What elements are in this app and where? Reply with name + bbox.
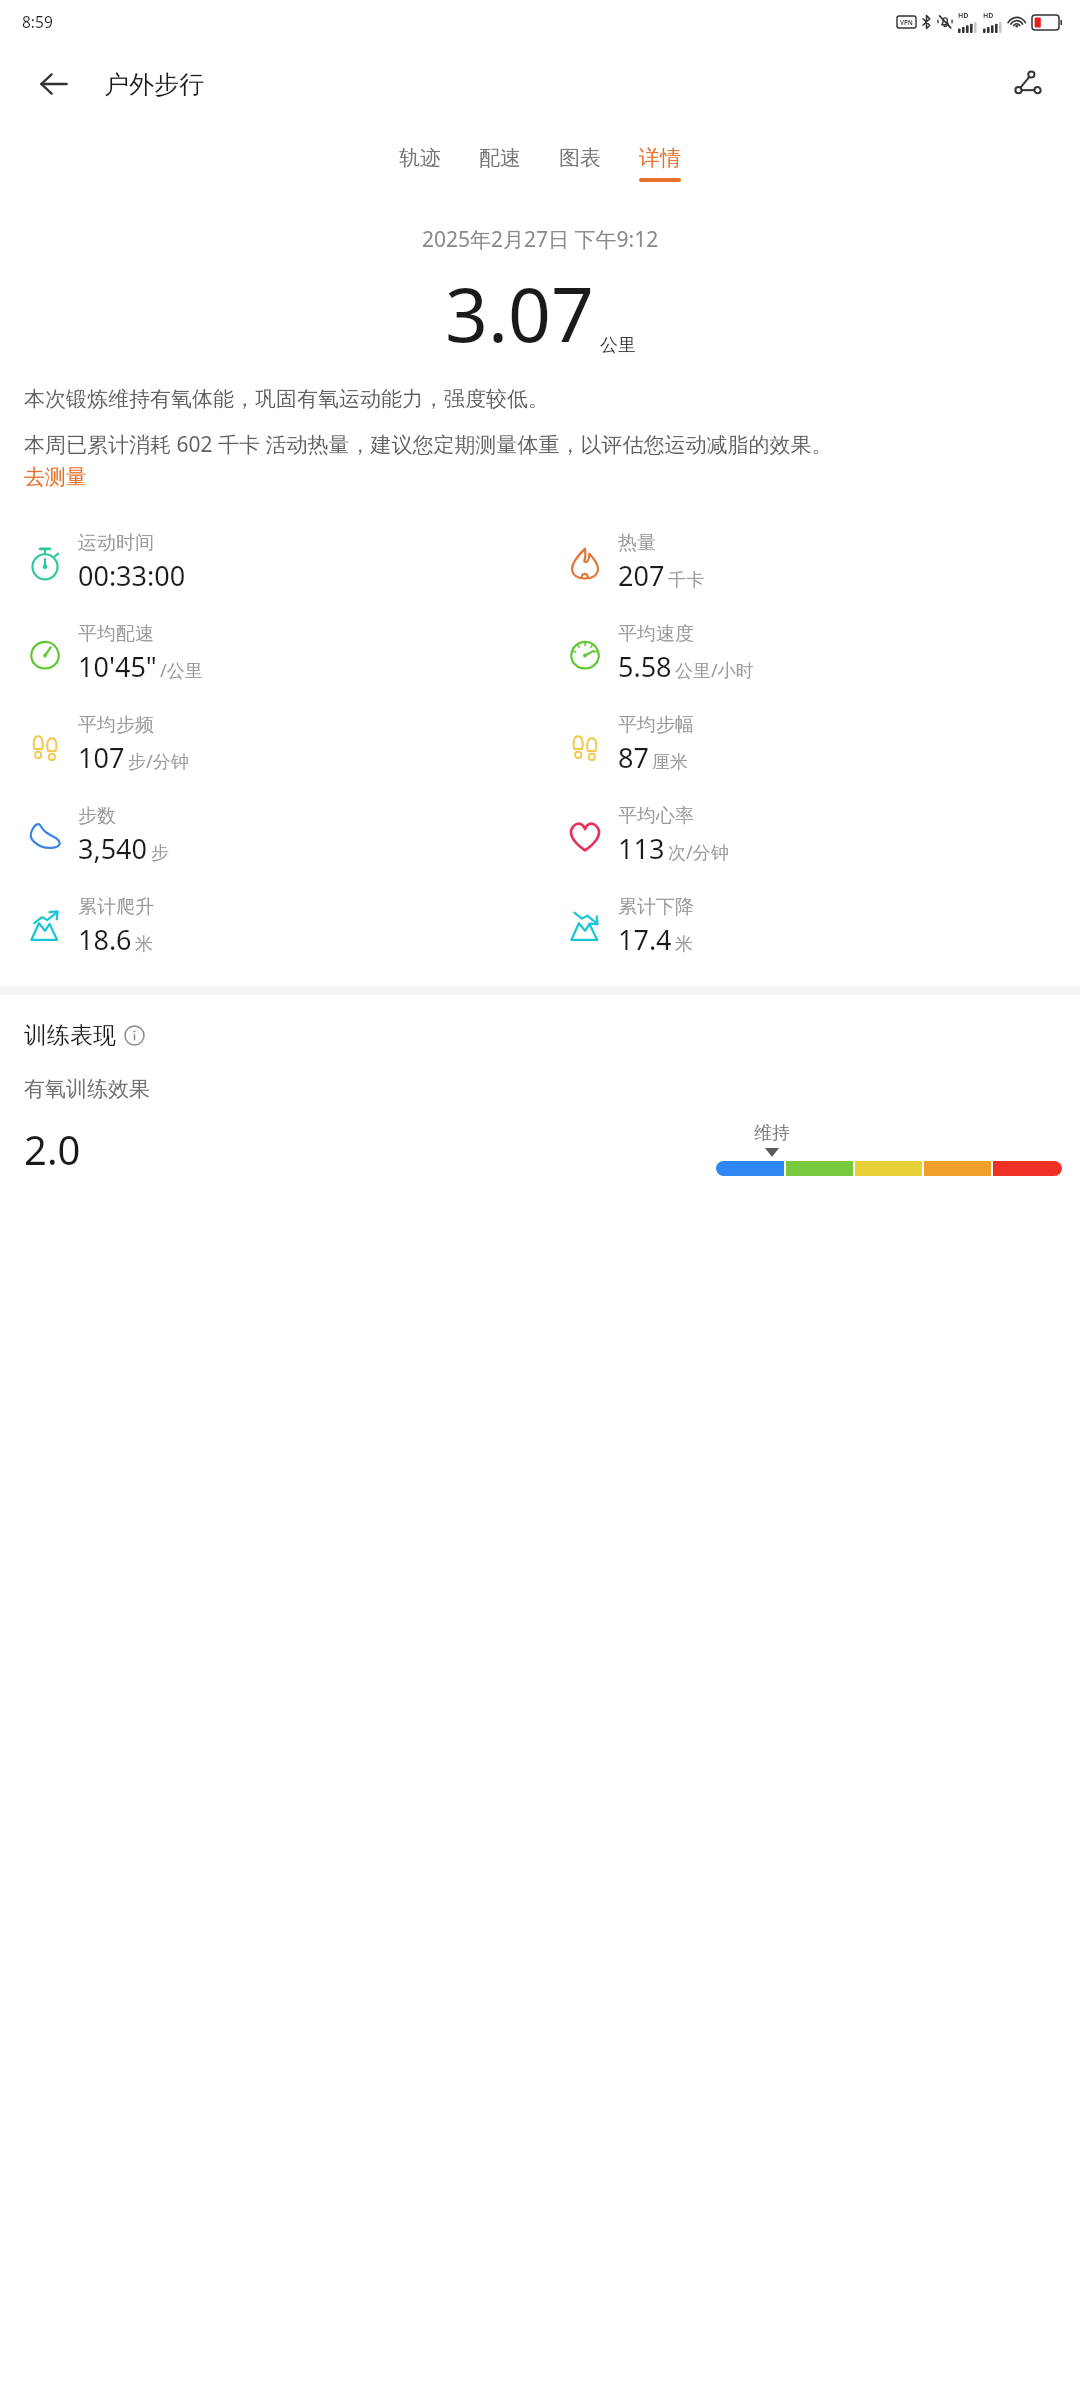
button[interactable]: 累计下降	[540, 881, 1080, 972]
staticText: 5.58	[618, 648, 672, 685]
staticText: 图表	[559, 145, 601, 171]
staticText: 87	[618, 739, 649, 776]
staticText: 17.4	[618, 921, 672, 958]
staticText: 步/分钟	[128, 749, 189, 774]
button[interactable]: 平均心率	[540, 790, 1080, 881]
staticText: 户外步行	[104, 69, 204, 100]
button[interactable]: 步数	[0, 790, 540, 881]
staticText: 00:33:00	[78, 557, 186, 594]
staticText: 8:59	[22, 11, 53, 32]
staticText: 运动时间	[78, 531, 154, 555]
staticText: 3,540	[78, 830, 148, 867]
staticText: 累计下降	[618, 895, 694, 919]
button[interactable]: 详情	[631, 141, 689, 186]
staticText: 公里	[600, 334, 636, 357]
button[interactable]: 返回	[30, 60, 78, 108]
staticText: 有氧训练效果	[24, 1076, 150, 1102]
staticText: 107	[78, 739, 125, 776]
staticText: HD	[958, 11, 969, 21]
button[interactable]: 平均配速	[0, 608, 540, 699]
button[interactable]: 平均步幅	[540, 699, 1080, 790]
staticText: 累计爬升	[78, 895, 154, 919]
staticText: 10'45"	[78, 648, 157, 685]
staticText: 厘米	[652, 751, 688, 774]
staticText: 轨迹	[399, 145, 441, 171]
staticText: VPN	[900, 18, 913, 26]
staticText: 千卡	[668, 569, 704, 592]
button[interactable]: 图表	[551, 141, 609, 186]
staticText: 配速	[479, 145, 521, 171]
staticText: 步	[151, 842, 169, 865]
staticText: 去测量	[24, 464, 87, 490]
button[interactable]: 分享	[1004, 60, 1052, 108]
button[interactable]: 配速	[471, 141, 529, 186]
staticText: 详情	[639, 145, 681, 171]
staticText: 平均配速	[78, 622, 154, 646]
staticText: 维持	[754, 1122, 790, 1145]
button[interactable]: 轨迹	[391, 141, 449, 186]
staticText: 训练表现	[24, 1021, 116, 1050]
staticText: 2025年2月27日 下午9:12	[422, 225, 659, 254]
button[interactable]: 训练表现	[24, 1021, 145, 1050]
staticText: 113	[618, 830, 665, 867]
staticText: 平均步幅	[618, 713, 694, 737]
staticText: 平均步频	[78, 713, 154, 737]
staticText: 本次锻炼维持有氧体能，巩固有氧运动能力，强度较低。	[24, 386, 549, 412]
staticText: HD	[983, 11, 994, 21]
button[interactable]: 累计爬升	[0, 881, 540, 972]
button[interactable]: 平均速度	[540, 608, 1080, 699]
button[interactable]: 去测量	[24, 461, 87, 493]
staticText: 3.07	[445, 262, 594, 364]
staticText: 公里/小时	[675, 658, 754, 683]
button[interactable]: 热量	[540, 517, 1080, 608]
button[interactable]: 平均步频	[0, 699, 540, 790]
staticText: 2.0	[24, 1122, 81, 1176]
button[interactable]: 运动时间	[0, 517, 540, 608]
staticText: 米	[135, 933, 153, 956]
staticText: 米	[675, 933, 693, 956]
staticText: 热量	[618, 531, 656, 555]
staticText: 步数	[78, 804, 116, 828]
staticText: 平均心率	[618, 804, 694, 828]
staticText: 次/分钟	[668, 840, 729, 865]
staticText: 平均速度	[618, 622, 694, 646]
staticText: /公里	[160, 658, 203, 683]
staticText: 本周已累计消耗 602 千卡 活动热量，建议您定期测量体重，以评估您运动减脂的效…	[24, 430, 833, 459]
staticText: 207	[618, 557, 665, 594]
staticText: 18.6	[78, 921, 132, 958]
